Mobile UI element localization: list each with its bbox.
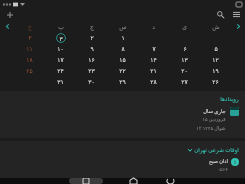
staticText: ۲۰	[181, 67, 188, 74]
staticText: ۸	[121, 45, 125, 52]
button[interactable]: ۲۲	[107, 65, 138, 76]
button[interactable]: ۱۹	[200, 65, 231, 76]
button[interactable]: ۱	[107, 32, 138, 43]
staticText: ۱۶	[88, 56, 95, 63]
staticText: ج	[28, 23, 32, 30]
button[interactable]: ۲۱	[138, 65, 169, 76]
button[interactable]: ۴	[14, 32, 45, 43]
staticText: ۱۲	[212, 56, 219, 63]
staticText: رویدادها	[220, 96, 239, 102]
button[interactable]: ۱۸	[14, 54, 45, 65]
button[interactable]: اوقات شرعی تهران	[188, 146, 239, 153]
button[interactable]: Search	[214, 8, 227, 21]
staticText: ۲۵	[26, 67, 33, 74]
button[interactable]: ۲۴	[45, 65, 76, 76]
button[interactable]: Next month	[231, 21, 245, 32]
staticText: ۲۱	[150, 67, 157, 74]
button[interactable]: ۲۹	[107, 76, 138, 87]
staticText: ۱۰	[57, 45, 64, 52]
button[interactable]: ۸	[107, 43, 138, 54]
button[interactable]: ۷	[138, 43, 169, 54]
button[interactable]: Prayer info	[231, 158, 239, 166]
button[interactable]: ۱۲	[200, 54, 231, 65]
staticText: ی	[182, 23, 187, 30]
button[interactable]: ۹	[76, 43, 107, 54]
button[interactable]: ۱۷	[45, 54, 76, 65]
staticText: ۱۸	[26, 56, 33, 63]
staticText: ۹	[90, 45, 94, 52]
button[interactable]: ۲۳	[76, 65, 107, 76]
staticText: ۷	[152, 45, 156, 52]
button[interactable]: ۳۱	[45, 76, 76, 87]
staticText: ۲۹	[119, 78, 126, 85]
staticText: ۱۹	[212, 67, 219, 74]
staticText: ش	[212, 23, 220, 30]
staticText: ۲۶	[212, 78, 219, 85]
staticText: ۲۴	[57, 67, 64, 74]
staticText: ۱۵	[119, 56, 126, 63]
button[interactable]: Back	[163, 178, 177, 184]
button[interactable]: Previous month	[0, 21, 14, 32]
staticText: i	[234, 159, 236, 166]
button[interactable]: ۲۷	[169, 76, 200, 87]
button[interactable]: ۱۳	[169, 54, 200, 65]
button[interactable]: ۱۵	[107, 54, 138, 65]
staticText: د	[152, 23, 155, 30]
staticText: چ	[90, 23, 94, 30]
button[interactable]: Add	[3, 8, 16, 21]
button[interactable]: ۲	[76, 32, 107, 43]
staticText: ۲۷	[181, 78, 188, 85]
staticText: ۱۳	[181, 56, 188, 63]
button[interactable]: ۶	[169, 43, 200, 54]
staticText: ۳۱	[57, 78, 64, 85]
staticText: ۱۲ شوال ۱۴۴۵	[196, 125, 226, 132]
staticText: ۰۵:۲۴	[217, 166, 228, 172]
staticText: ۱۷	[57, 56, 64, 63]
button[interactable]: ۳۰	[76, 76, 107, 87]
button[interactable]: ۱۶	[76, 54, 107, 65]
staticText: ۵	[214, 45, 218, 52]
staticText: ۲۸	[150, 78, 157, 85]
button[interactable]: ۱۱	[14, 43, 45, 54]
button[interactable]: ۲۶	[200, 76, 231, 87]
staticText: س	[119, 23, 127, 30]
button[interactable]: Menu	[230, 8, 243, 21]
button[interactable]: Calendar event	[230, 107, 239, 116]
staticText: جاری سال	[203, 107, 226, 114]
button[interactable]: ۲۵	[14, 65, 45, 76]
button[interactable]: ۲۰	[169, 65, 200, 76]
button[interactable]: ۱۴	[138, 54, 169, 65]
staticText: ۱۴	[150, 56, 157, 63]
staticText: ۱۱	[26, 45, 33, 52]
button[interactable]: ۵	[200, 43, 231, 54]
staticText: ۴	[28, 34, 32, 41]
staticText: ۶	[183, 45, 187, 52]
staticText: ۲۳	[88, 67, 95, 74]
staticText: پ	[58, 23, 64, 30]
staticText: اوقات شرعی تهران	[194, 146, 239, 153]
staticText: ۱	[121, 34, 125, 41]
staticText: ۲	[90, 34, 94, 41]
button[interactable]: ۱۰	[45, 43, 76, 54]
staticText: ۲۲	[119, 67, 126, 74]
button[interactable]: ۲۸	[138, 76, 169, 87]
staticText: ۳۰	[88, 78, 95, 85]
button[interactable]: Home	[126, 178, 140, 184]
staticText: ۳	[59, 35, 63, 42]
staticText: ۱۵ فروردین	[202, 116, 226, 123]
button[interactable]: ۳	[45, 32, 76, 43]
button[interactable]: Recents	[69, 178, 103, 184]
staticText: اذان صبح	[209, 158, 228, 165]
